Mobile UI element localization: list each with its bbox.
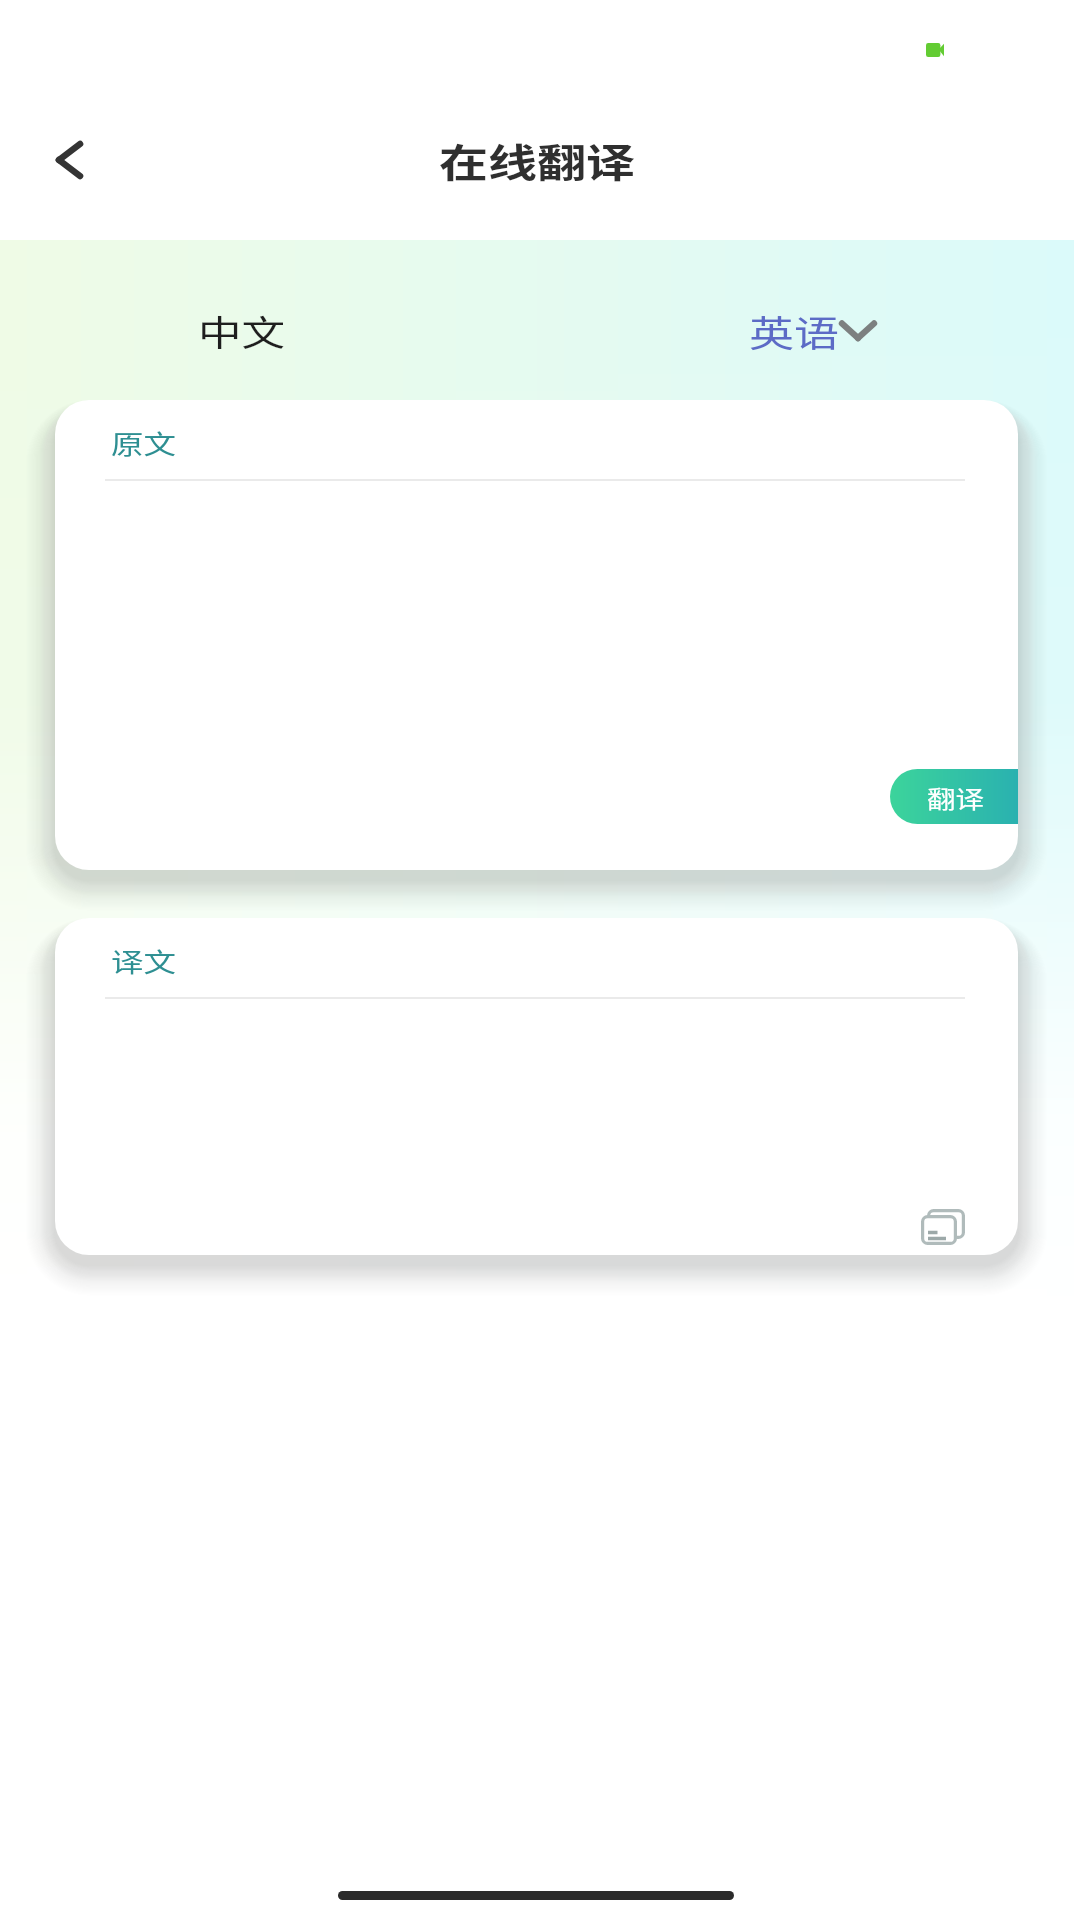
button[interactable]: Copy	[921, 1209, 965, 1245]
staticText: 英语	[749, 305, 840, 357]
staticText: 中文	[198, 306, 285, 357]
staticText: 在线翻译	[439, 132, 636, 188]
staticText: 翻译	[927, 781, 985, 815]
button[interactable]: 英语	[735, 294, 884, 374]
button[interactable]: 翻译	[890, 769, 1018, 824]
staticText: 原文	[111, 423, 177, 462]
button[interactable]: Back	[20, 112, 116, 208]
button[interactable]: 中文	[170, 294, 312, 374]
staticText: 译文	[111, 941, 177, 980]
